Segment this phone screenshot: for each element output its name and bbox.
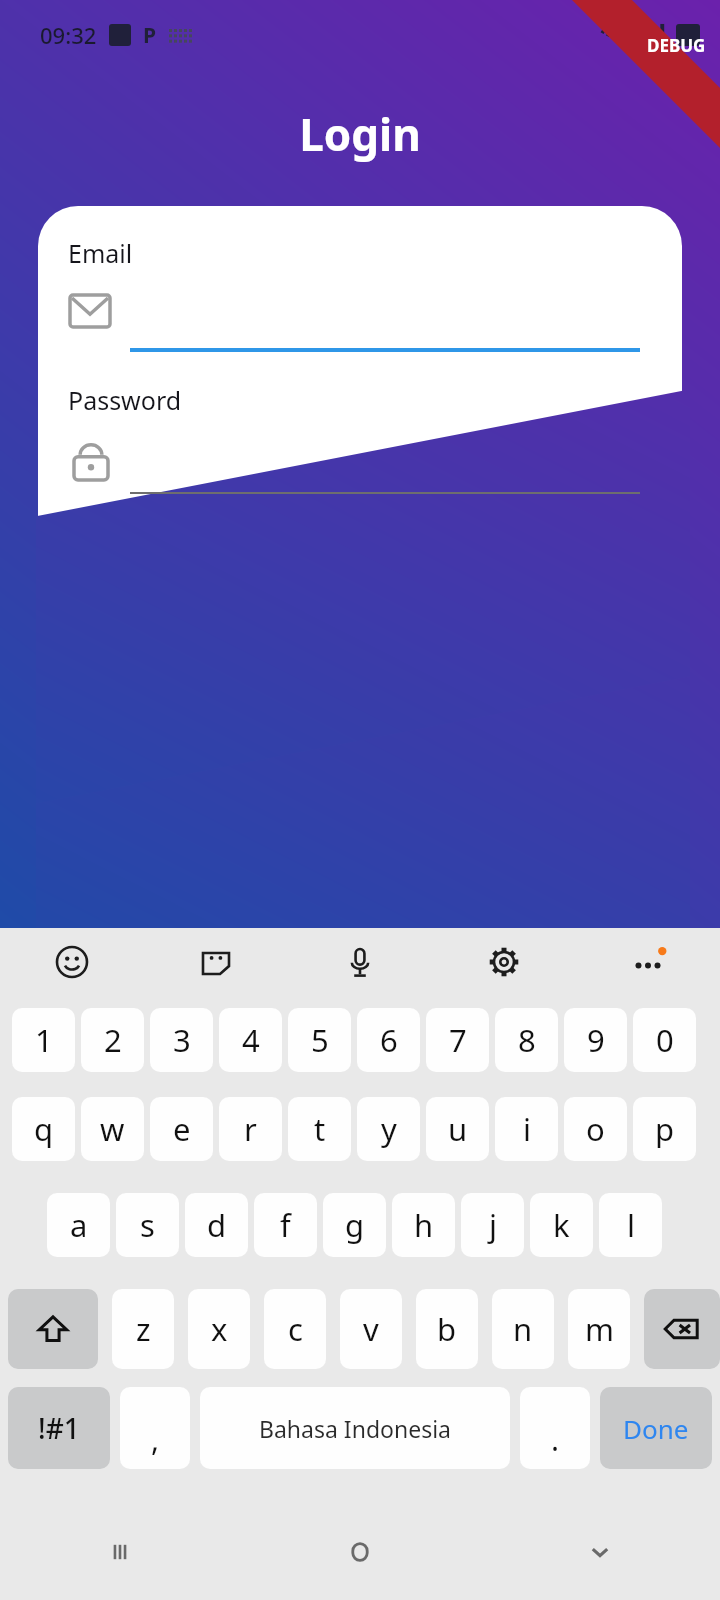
button[interactable]: r [219,1097,282,1161]
staticText: e [173,1108,191,1150]
button[interactable]: Done [600,1387,712,1469]
button[interactable]: h [392,1193,455,1257]
staticText: 4 [242,1019,260,1061]
button[interactable]: 7 [426,1008,489,1072]
button[interactable]: Emoji [0,928,144,996]
button[interactable]: !#1 [8,1387,110,1469]
button[interactable]: j [461,1193,524,1257]
staticText: Email [68,236,133,270]
button[interactable]: 2 [81,1008,144,1072]
staticText: s [140,1204,155,1246]
staticText: . [551,1419,560,1460]
other: Password [74,440,108,480]
staticText: 8 [518,1019,536,1061]
staticText: j [489,1204,497,1246]
button[interactable]: Backspace [644,1289,720,1369]
staticText: f [280,1204,291,1246]
button[interactable]: v [340,1289,402,1369]
staticText: d [207,1204,227,1246]
button[interactable]: a [47,1193,110,1257]
staticText: l [627,1204,635,1246]
button[interactable]: n [492,1289,554,1369]
button[interactable]: 5 [288,1008,351,1072]
staticText: t [314,1108,326,1150]
button[interactable]: m [568,1289,630,1369]
button[interactable]: Bahasa Indonesia [200,1387,510,1469]
button[interactable]: 9 [564,1008,627,1072]
staticText: b [437,1308,457,1350]
button[interactable]: k [530,1193,593,1257]
button[interactable]: 8 [495,1008,558,1072]
staticText: 7 [449,1019,467,1061]
button[interactable]: Hide keyboard [480,1504,720,1600]
button[interactable]: c [264,1289,326,1369]
staticText: o [586,1108,605,1150]
staticText: 5 [311,1019,329,1061]
button[interactable]: t [288,1097,351,1161]
button[interactable]: x [188,1289,250,1369]
button[interactable]: y [357,1097,420,1161]
button[interactable]: Shift [8,1289,98,1369]
button[interactable]: o [564,1097,627,1161]
staticText: g [345,1204,365,1246]
staticText: 09:32 [40,20,97,50]
staticText: u [448,1108,468,1150]
staticText: 6 [380,1019,398,1061]
button[interactable]: More options [576,928,720,996]
staticText: k [553,1204,570,1246]
staticText: Done [623,1411,689,1446]
button[interactable]: 6 [357,1008,420,1072]
button[interactable]: q [12,1097,75,1161]
staticText: Bahasa Indonesia [259,1413,451,1444]
staticText: Login [299,104,421,164]
other: Email [70,295,110,327]
staticText: w [100,1108,125,1150]
button[interactable]: e [150,1097,213,1161]
staticText: , [151,1419,160,1460]
staticText: q [34,1108,54,1150]
button[interactable]: g [323,1193,386,1257]
button[interactable]: Keyboard settings [432,928,576,996]
staticText: 3 [173,1019,191,1061]
button[interactable]: 4 [219,1008,282,1072]
button[interactable]: Recent apps [0,1504,240,1600]
button[interactable]: 0 [633,1008,696,1072]
staticText: z [136,1308,151,1350]
button[interactable]: p [633,1097,696,1161]
button[interactable]: 3 [150,1008,213,1072]
button[interactable]: s [116,1193,179,1257]
button[interactable]: i [495,1097,558,1161]
button[interactable]: Voice input [288,928,432,996]
staticText: y [381,1108,397,1150]
staticText: i [523,1108,531,1150]
staticText: a [70,1204,88,1246]
button[interactable]: d [185,1193,248,1257]
staticText: m [585,1308,614,1350]
button[interactable]: f [254,1193,317,1257]
staticText: 0 [656,1019,674,1061]
staticText: p [655,1108,675,1150]
staticText: Password [68,383,182,417]
staticText: P [143,21,157,50]
staticText: r [244,1108,257,1150]
staticText: x [211,1308,228,1350]
staticText: c [288,1308,303,1350]
staticText: v [363,1308,379,1350]
button[interactable]: Stickers [144,928,288,996]
staticText: 2 [104,1019,122,1061]
button[interactable]: l [599,1193,662,1257]
staticText: DEBUG [647,34,706,57]
staticText: n [513,1308,533,1350]
button[interactable]: u [426,1097,489,1161]
button[interactable]: 1 [12,1008,75,1072]
button[interactable]: . [520,1387,590,1469]
staticText: h [414,1204,434,1246]
button[interactable]: w [81,1097,144,1161]
staticText: 1 [35,1019,53,1061]
button[interactable]: Home [240,1504,480,1600]
button[interactable]: z [112,1289,174,1369]
button[interactable]: b [416,1289,478,1369]
button[interactable]: , [120,1387,190,1469]
